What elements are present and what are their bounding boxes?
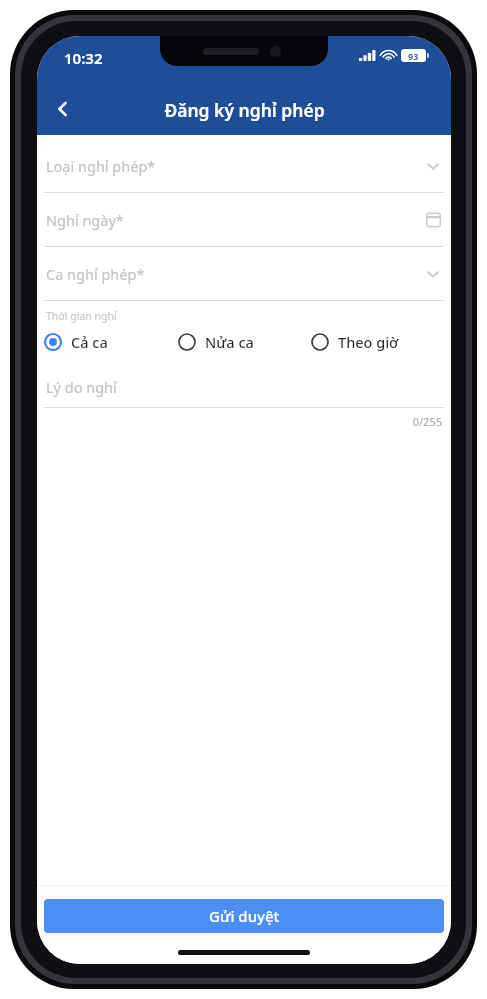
button[interactable]: Nửa ca: [178, 330, 311, 354]
staticText: Theo giờ: [338, 332, 399, 352]
staticText: 0/255: [37, 414, 442, 429]
button[interactable]: Gửi duyệt: [44, 899, 444, 933]
staticText: Nửa ca: [205, 332, 254, 352]
staticText: Loại nghỉ phép*: [46, 156, 424, 176]
button[interactable]: Loại nghỉ phép*: [37, 139, 451, 193]
staticText: Gửi duyệt: [209, 906, 280, 926]
staticText: Cả ca: [71, 332, 108, 352]
staticText: Thời gian nghỉ: [46, 309, 117, 323]
button[interactable]: Theo giờ: [311, 330, 444, 354]
staticText: Đăng ký nghỉ phép: [164, 98, 325, 122]
button[interactable]: Cả ca: [44, 330, 178, 354]
staticText: 10:32: [64, 48, 103, 68]
staticText: Nghỉ ngày*: [46, 210, 425, 230]
button[interactable]: Back: [40, 86, 86, 132]
staticText: 93: [408, 50, 419, 62]
staticText: Ca nghỉ phép*: [46, 264, 424, 284]
button[interactable]: Nghỉ ngày*: [37, 193, 451, 247]
button[interactable]: Ca nghỉ phép*: [37, 247, 451, 301]
staticText: Lý do nghỉ: [46, 377, 117, 397]
button[interactable]: Lý do nghỉ: [37, 367, 451, 407]
